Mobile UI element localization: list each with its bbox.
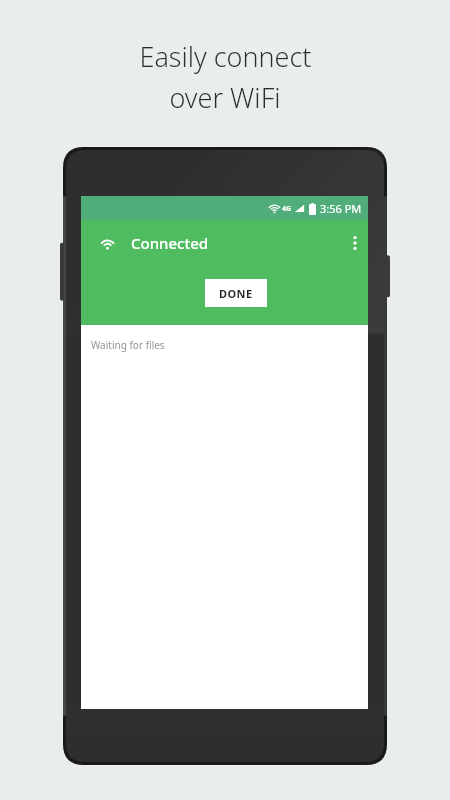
button[interactable]: More options [342, 230, 368, 256]
button[interactable]: DONE [205, 279, 267, 307]
button[interactable]: WiFi connected [95, 231, 119, 255]
staticText: 4G [282, 204, 292, 214]
staticText: Connected [131, 233, 209, 253]
staticText: 3:56 PM [320, 201, 362, 216]
staticText: Waiting for files [91, 338, 165, 352]
staticText: DONE [219, 286, 253, 301]
staticText: over WiFi [169, 79, 281, 116]
staticText: Easily connect [139, 38, 312, 75]
